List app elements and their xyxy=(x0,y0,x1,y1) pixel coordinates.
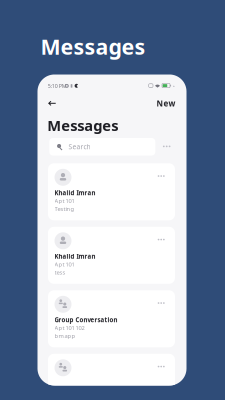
staticText: Search xyxy=(68,142,90,151)
button[interactable]: Back xyxy=(45,96,59,110)
button[interactable] xyxy=(48,354,175,400)
staticText: tess xyxy=(54,268,65,276)
staticText: New xyxy=(156,98,175,109)
staticText: Messages xyxy=(47,116,118,135)
button[interactable]: Khalid Imran xyxy=(48,163,175,220)
staticText: Apt 101 102 xyxy=(54,324,84,332)
staticText: Messages xyxy=(40,32,145,61)
staticText: Testing xyxy=(54,205,74,213)
staticText: Khalid Imran xyxy=(54,189,95,197)
staticText: Apt 101 xyxy=(54,260,74,268)
button[interactable]: New xyxy=(153,97,179,109)
staticText: + xyxy=(173,83,175,88)
staticText: Khalid Imran xyxy=(54,252,95,261)
staticText: Group Conversation xyxy=(54,316,117,324)
staticText: 5:10 PM xyxy=(48,82,67,90)
button[interactable]: More options xyxy=(159,141,175,152)
button[interactable]: Khalid Imran xyxy=(48,227,175,284)
staticText: Apt 101 xyxy=(54,197,74,205)
staticText: bm app xyxy=(54,332,75,340)
button[interactable]: Group Conversation xyxy=(48,290,175,347)
